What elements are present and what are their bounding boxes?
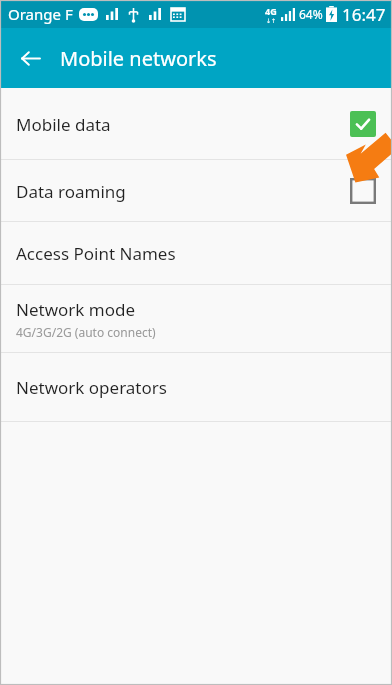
- button[interactable]: Network mode: [0, 285, 392, 353]
- staticText: 64%: [299, 6, 323, 22]
- button[interactable]: Mobile data: [0, 88, 392, 160]
- staticText: Data roaming: [16, 180, 126, 203]
- button[interactable]: Back: [8, 36, 52, 80]
- staticText: 4G/3G/2G (auto connect): [16, 324, 156, 340]
- staticText: 16:47: [342, 3, 386, 26]
- staticText: Network mode: [16, 298, 136, 321]
- staticText: Mobile data: [16, 113, 111, 136]
- staticText: ↓↑: [266, 17, 277, 24]
- button[interactable]: Network operators: [0, 353, 392, 422]
- staticText: 4G: [265, 5, 277, 17]
- button[interactable]: Access Point Names: [0, 222, 392, 285]
- staticText: Orange F: [8, 4, 73, 24]
- staticText: Mobile networks: [60, 45, 217, 72]
- button[interactable]: Data roaming: [0, 160, 392, 222]
- staticText: Access Point Names: [16, 242, 176, 265]
- staticText: Network operators: [16, 376, 167, 399]
